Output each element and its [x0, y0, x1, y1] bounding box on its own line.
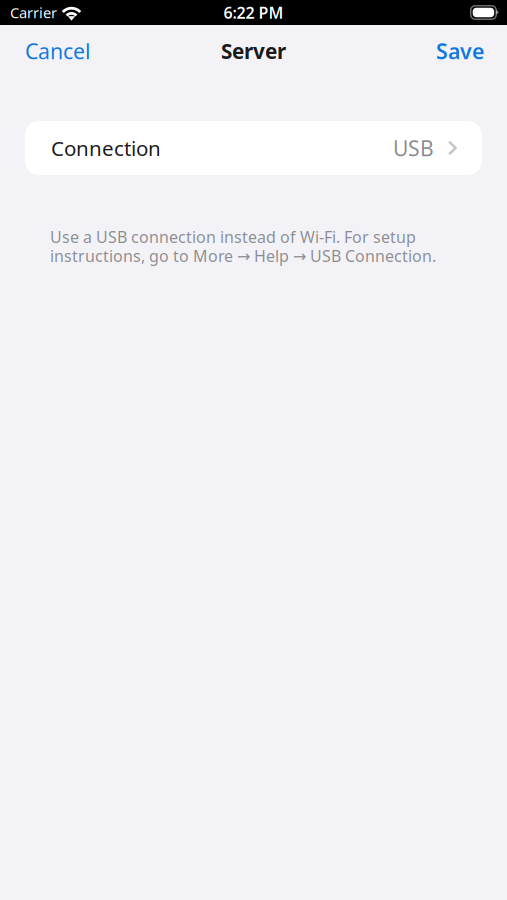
button[interactable]: Connection: [25, 121, 482, 175]
staticText: instructions, go to More → Help → USB Co…: [50, 245, 436, 267]
staticText: Carrier: [10, 2, 57, 22]
button[interactable]: Save: [424, 26, 496, 76]
staticText: Save: [436, 36, 484, 66]
staticText: Server: [221, 37, 286, 65]
staticText: Cancel: [25, 36, 91, 66]
staticText: 6:22 PM: [223, 2, 283, 23]
staticText: Use a USB connection instead of Wi-Fi. F…: [50, 226, 416, 248]
button[interactable]: Cancel: [13, 26, 103, 76]
staticText: USB: [393, 134, 434, 162]
staticText: Connection: [51, 134, 161, 162]
